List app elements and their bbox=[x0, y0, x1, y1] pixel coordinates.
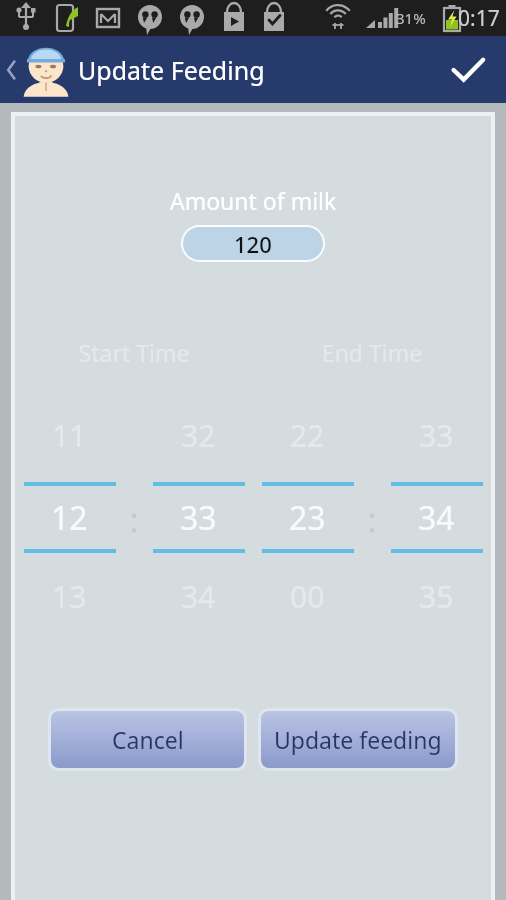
staticText: End Time bbox=[253, 337, 491, 368]
button[interactable]: 120 bbox=[181, 225, 325, 262]
staticText: 33 bbox=[419, 415, 454, 456]
button[interactable]: Number picker bbox=[382, 407, 491, 639]
button[interactable]: Number picker bbox=[253, 407, 362, 639]
staticText: Update feeding bbox=[274, 724, 442, 755]
staticText: Update Feeding bbox=[78, 53, 265, 87]
button[interactable]: Cancel bbox=[48, 708, 247, 771]
staticText: 33 bbox=[180, 496, 217, 540]
staticText: Amount of milk bbox=[170, 185, 337, 216]
button[interactable]: Number picker bbox=[15, 407, 124, 639]
staticText: 32 bbox=[181, 415, 216, 456]
staticText: 13 bbox=[52, 576, 87, 617]
staticText: 00 bbox=[290, 576, 325, 617]
staticText: Start Time bbox=[15, 337, 253, 368]
button[interactable]: Update feeding bbox=[258, 708, 458, 771]
staticText: 34 bbox=[181, 576, 216, 617]
staticText: 11 bbox=[52, 415, 87, 456]
staticText: Cancel bbox=[112, 724, 184, 755]
staticText: 0:17 bbox=[458, 4, 500, 33]
staticText: 120 bbox=[234, 229, 272, 259]
staticText: 35 bbox=[419, 576, 454, 617]
staticText: 22 bbox=[290, 415, 325, 456]
button[interactable]: Number picker bbox=[144, 407, 253, 639]
staticText: 34 bbox=[418, 496, 455, 540]
staticText: 31% bbox=[396, 8, 426, 28]
staticText: 12 bbox=[51, 496, 88, 540]
staticText: 23 bbox=[289, 496, 326, 540]
button[interactable]: Save bbox=[430, 36, 506, 103]
button[interactable]: Navigate up bbox=[0, 36, 80, 103]
